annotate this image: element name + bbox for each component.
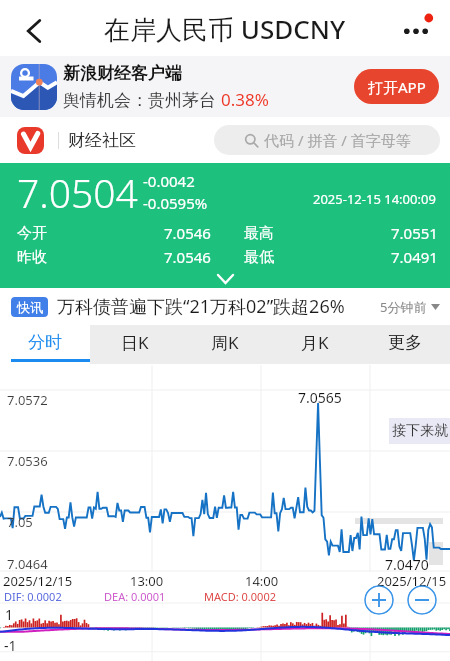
staticText: 今开 [17, 224, 47, 243]
staticText: 1 [5, 605, 14, 624]
staticText: 更多 [388, 332, 422, 353]
staticText: 日K [121, 331, 149, 354]
button[interactable]: 周K [180, 325, 270, 365]
staticText: 0.38% [221, 88, 269, 111]
staticText: 7.0551 [391, 223, 438, 243]
staticText: 打开APP [368, 77, 426, 97]
staticText: 2025/12/15 [377, 572, 447, 589]
staticText: DIF: 0.0002 [4, 589, 62, 603]
staticText: 14:00 [245, 572, 279, 589]
staticText: 7.0546 [164, 247, 211, 267]
button[interactable]: 日K [90, 325, 180, 365]
staticText: 7.0504 [17, 166, 138, 219]
staticText: 7.0565 [298, 388, 342, 407]
staticText: DEA: 0.0001 [104, 589, 166, 603]
staticText: 财经社区 [68, 130, 136, 151]
staticText: -0.0595% [143, 193, 208, 213]
staticText: 7.05 [7, 513, 33, 531]
staticText: 7.0572 [7, 391, 48, 409]
staticText: 7.0491 [391, 247, 438, 267]
staticText: 7.0536 [7, 452, 48, 470]
staticText: 在岸人民币 USDCNY [104, 11, 346, 47]
button[interactable]: Zoom in [364, 585, 394, 615]
staticText: 最高 [244, 224, 274, 243]
button[interactable]: 代码 / 拼音 / 首字母等 [214, 125, 440, 155]
staticText: 代码 / 拼音 / 首字母等 [264, 130, 411, 150]
button[interactable]: 更多 [360, 325, 450, 365]
staticText: 7.0546 [164, 223, 211, 243]
button[interactable]: 月K [270, 325, 360, 365]
staticText: -0.0042 [143, 171, 195, 191]
staticText: 舆情机会：贵州茅台 [63, 88, 221, 111]
button[interactable]: Expand details [0, 271, 450, 288]
staticText: 分时 [28, 332, 62, 353]
staticText: 2025-12-15 14:00:09 [313, 190, 436, 208]
button[interactable]: Back [12, 6, 56, 50]
staticText: 昨收 [17, 248, 47, 267]
staticText: 接下来就 [392, 422, 448, 440]
staticText: 万科债普遍下跌“21万科02”跌超26% [57, 294, 345, 319]
staticText: 月K [301, 331, 329, 354]
staticText: 7.0464 [7, 555, 48, 572]
button[interactable]: 分时 [0, 325, 90, 365]
button[interactable]: More options [393, 5, 439, 51]
staticText: 最低 [244, 248, 274, 267]
staticText: 7.0470 [385, 555, 429, 572]
button[interactable]: 打开APP [354, 69, 439, 104]
button[interactable]: Zoom out [407, 585, 437, 615]
staticText: 周K [211, 331, 239, 354]
staticText: 13:00 [130, 572, 164, 589]
staticText: -1 [4, 636, 17, 655]
button[interactable]: 快讯 [0, 288, 450, 325]
staticText: 2025/12/15 [3, 572, 73, 589]
staticText: 快讯 [17, 299, 43, 315]
staticText: 5分钟前 [380, 298, 427, 316]
staticText: MACD: 0.0002 [204, 589, 276, 603]
staticText: 新浪财经客户端 [63, 63, 182, 84]
